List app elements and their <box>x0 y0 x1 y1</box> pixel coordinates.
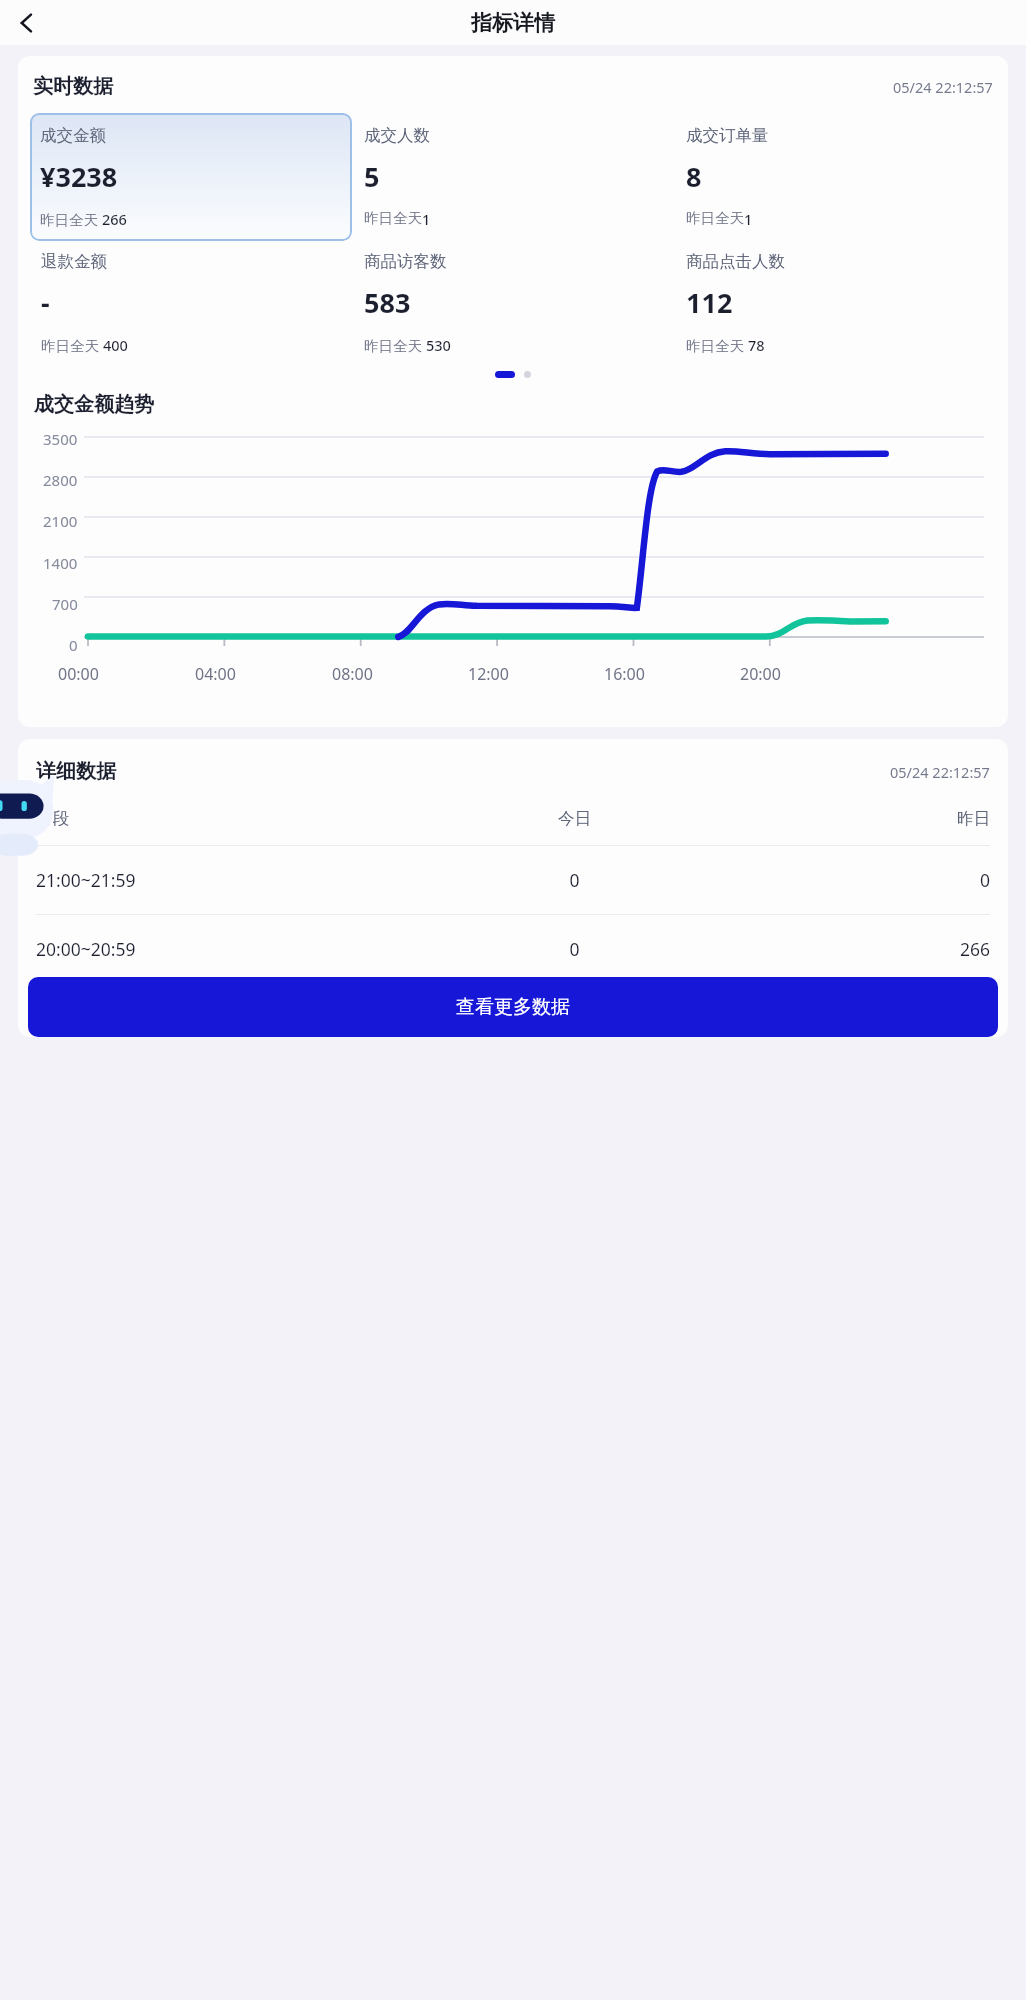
staticText: 退款金额 <box>41 251 107 272</box>
button[interactable]: 20:00~20:59 <box>18 937 1008 961</box>
staticText: ¥3238 <box>40 158 118 195</box>
staticText: 指标详情 <box>471 10 555 36</box>
staticText: 266 <box>713 937 990 961</box>
button[interactable]: 商品点击人数 <box>674 245 996 361</box>
staticText: 昨日全天 <box>364 335 426 355</box>
staticText: 0 <box>713 868 990 892</box>
staticText: 成交订单量 <box>686 125 769 146</box>
staticText: 昨日全天 <box>364 209 422 227</box>
staticText: 昨日全天 <box>686 335 748 355</box>
staticText: 112 <box>686 284 733 321</box>
staticText: 530 <box>426 335 451 355</box>
staticText: 今日 <box>436 808 713 829</box>
staticText: 12:00 <box>468 663 509 685</box>
staticText: 昨日全天 <box>41 335 103 355</box>
staticText: - <box>41 284 50 321</box>
staticText: 商品访客数 <box>364 251 447 272</box>
staticText: 1 <box>744 209 753 229</box>
staticText: 2100 <box>43 511 78 531</box>
button[interactable]: 退款金额 <box>30 245 352 361</box>
staticText: 成交金额趋势 <box>34 392 154 417</box>
staticText: 成交人数 <box>364 125 430 146</box>
staticText: 成交金额 <box>40 125 106 146</box>
staticText: 0 <box>69 635 78 655</box>
staticText: 昨日全天 <box>40 209 102 229</box>
staticText: 08:00 <box>332 663 373 685</box>
staticText: 查看更多数据 <box>456 995 570 1019</box>
staticText: 400 <box>103 335 128 355</box>
staticText: 266 <box>102 209 127 229</box>
staticText: 8 <box>686 158 702 195</box>
staticText: 20:00 <box>740 663 781 685</box>
button[interactable]: 查看更多数据 <box>28 977 998 1037</box>
staticText: 1400 <box>43 553 78 573</box>
button[interactable]: 成交金额 <box>30 113 352 241</box>
staticText: 20:00~20:59 <box>36 937 436 961</box>
staticText: 0 <box>436 868 713 892</box>
staticText: 583 <box>364 284 411 321</box>
staticText: 1 <box>422 209 431 229</box>
staticText: 详细数据 <box>36 759 116 784</box>
staticText: 16:00 <box>604 663 645 685</box>
staticText: 2800 <box>43 470 78 490</box>
button[interactable]: 商品访客数 <box>352 245 674 361</box>
staticText: 05/24 22:12:57 <box>890 762 990 782</box>
staticText: 04:00 <box>195 663 236 685</box>
staticText: 700 <box>52 594 78 614</box>
button[interactable]: 成交订单量 <box>674 113 996 241</box>
staticText: 昨日 <box>713 808 990 829</box>
staticText: 实时数据 <box>33 74 113 99</box>
staticText: 3500 <box>43 429 78 449</box>
button[interactable]: AI assistant <box>0 775 58 859</box>
staticText: 5 <box>364 158 380 195</box>
button[interactable]: Back <box>4 0 50 45</box>
staticText: 时段 <box>36 808 436 829</box>
staticText: 05/24 22:12:57 <box>893 77 993 97</box>
staticText: 昨日全天 <box>686 209 744 227</box>
staticText: 78 <box>748 335 765 355</box>
button[interactable]: 成交人数 <box>352 113 674 241</box>
button[interactable]: 21:00~21:59 <box>18 868 1008 892</box>
staticText: 商品点击人数 <box>686 251 785 272</box>
staticText: 00:00 <box>58 663 99 685</box>
staticText: 0 <box>436 937 713 961</box>
staticText: 21:00~21:59 <box>36 868 436 892</box>
